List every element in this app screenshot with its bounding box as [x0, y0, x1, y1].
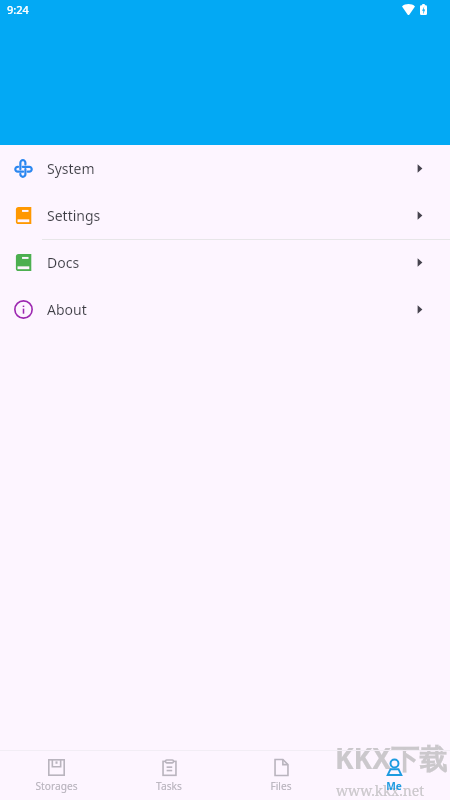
- button[interactable]: Storages: [0, 751, 112, 800]
- staticText: Settings: [47, 206, 101, 225]
- staticText: Files: [270, 779, 292, 793]
- staticText: Docs: [47, 253, 80, 272]
- staticText: Storages: [35, 779, 78, 793]
- staticText: System: [47, 159, 95, 178]
- button[interactable]: System: [0, 145, 450, 192]
- button[interactable]: Files: [225, 751, 337, 800]
- button[interactable]: Tasks: [113, 751, 225, 800]
- staticText: 9:24: [7, 2, 29, 17]
- button[interactable]: Settings: [0, 192, 450, 239]
- button[interactable]: Docs: [0, 239, 450, 286]
- staticText: Tasks: [156, 779, 182, 793]
- staticText: About: [47, 300, 87, 319]
- staticText: Me: [386, 779, 402, 793]
- staticText: www.kkx.net: [336, 781, 425, 800]
- button[interactable]: Me: [338, 751, 450, 800]
- staticText: KKX下载: [335, 739, 447, 777]
- button[interactable]: About: [0, 286, 450, 333]
